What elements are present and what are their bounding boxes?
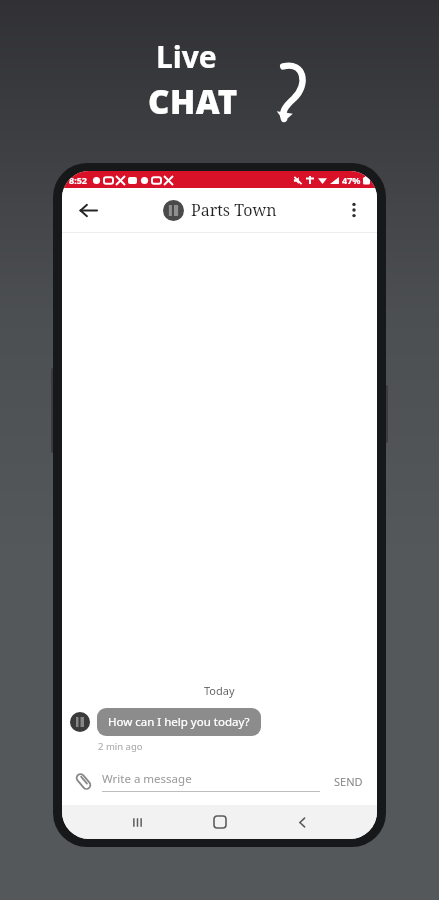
button[interactable]: Home: [179, 805, 261, 839]
staticText: Live: [156, 36, 217, 77]
button[interactable]: SEND: [330, 770, 367, 793]
button[interactable]: Back: [71, 193, 105, 227]
button[interactable]: Attach file: [72, 770, 94, 792]
staticText: SEND: [334, 774, 363, 789]
button[interactable]: How can I help you today?: [97, 708, 261, 736]
staticText: 2 min ago: [98, 740, 143, 753]
button[interactable]: Recents: [96, 805, 179, 839]
staticText: CHAT: [148, 79, 238, 124]
staticText: How can I help you today?: [108, 714, 250, 730]
staticText: 8:52: [69, 174, 87, 186]
staticText: Parts Town: [191, 199, 277, 221]
button[interactable]: Write a message: [102, 771, 320, 792]
staticText: Write a message: [102, 771, 192, 787]
button[interactable]: More options: [339, 195, 369, 225]
button[interactable]: Back: [261, 805, 343, 839]
staticText: 47%: [342, 174, 361, 186]
staticText: Today: [204, 683, 235, 698]
